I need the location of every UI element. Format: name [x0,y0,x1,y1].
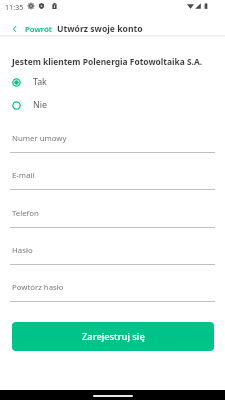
staticText: Powrót [25,24,52,35]
staticText: Zarejestruj się [82,330,145,343]
button[interactable]: Nie [0,95,225,115]
staticText: Jestem klientem Polenergia Fotowoltaika … [12,56,203,67]
staticText: E-mail [12,170,35,181]
button[interactable]: Tak [0,72,225,92]
button[interactable]: Powrót [0,19,56,39]
button[interactable]: E-mail [10,167,215,190]
staticText: Powtórz hasło [12,282,64,293]
button[interactable]: Powtórz hasło [10,279,215,302]
staticText: Telefon [12,208,39,219]
staticText: 11:35 [5,2,24,12]
staticText: Utwórz swoje konto [57,23,143,35]
staticText: Hasło [12,245,33,256]
button[interactable]: Zarejestruj się [12,322,214,351]
button[interactable]: Hasło [10,242,215,265]
button[interactable]: Numer umowy [10,130,215,153]
button[interactable]: Telefon [10,205,215,228]
staticText: Tak [33,76,47,88]
staticText: Numer umowy [12,133,67,144]
staticText: Nie [33,99,47,111]
